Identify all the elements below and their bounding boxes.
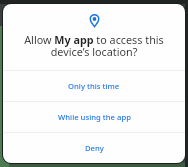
staticText: Deny bbox=[85, 143, 104, 153]
button[interactable]: While using the app bbox=[3, 102, 185, 132]
staticText: Allow My app to access this device’s loc… bbox=[24, 32, 164, 59]
staticText: While using the app bbox=[58, 112, 131, 122]
staticText: Only this time bbox=[68, 81, 120, 91]
button[interactable]: Only this time bbox=[3, 71, 185, 101]
button[interactable]: Deny bbox=[3, 133, 185, 163]
